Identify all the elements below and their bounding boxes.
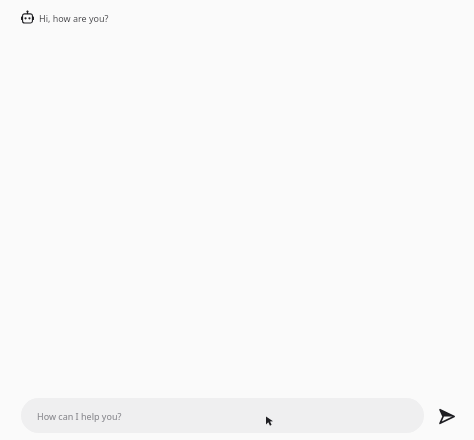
- button[interactable]: How can I help you?: [21, 398, 424, 433]
- staticText: How can I help you?: [37, 410, 122, 422]
- button[interactable]: Hi, how are you?: [0, 9, 474, 26]
- staticText: Hi, how are you?: [39, 12, 109, 24]
- button[interactable]: Send: [432, 402, 460, 430]
